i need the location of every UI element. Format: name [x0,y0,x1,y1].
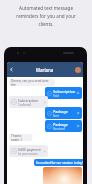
staticText: Package [53,109,68,114]
button[interactable]: Back [8,66,15,73]
staticText: Mariana [36,67,54,73]
staticText: So excited for our session today! [36,161,83,165]
staticText: Sent [53,114,59,118]
button[interactable]: Profile photo [75,67,81,73]
button[interactable]: So excited for our session today! [34,159,83,166]
staticText: Package [53,122,68,127]
button[interactable]: $400 payment [9,145,48,157]
staticText: Automated text message reminders for you… [14,5,78,28]
button[interactable]: Package [45,107,82,119]
button[interactable]: Subscription [9,96,48,108]
staticText: $400 payment [18,147,41,152]
staticText: Confirmed [18,103,31,107]
button[interactable]: Package [45,120,82,132]
staticText: Received [53,127,65,131]
staticText: Subscription [18,98,38,103]
staticText: Thanks again :) [11,134,30,141]
staticText: for your session [18,152,38,156]
staticText: Donna, can you send over the [11,79,53,86]
button[interactable]: Subscription [45,87,82,99]
staticText: Subscription [53,89,76,94]
staticText: Paid [53,94,59,98]
